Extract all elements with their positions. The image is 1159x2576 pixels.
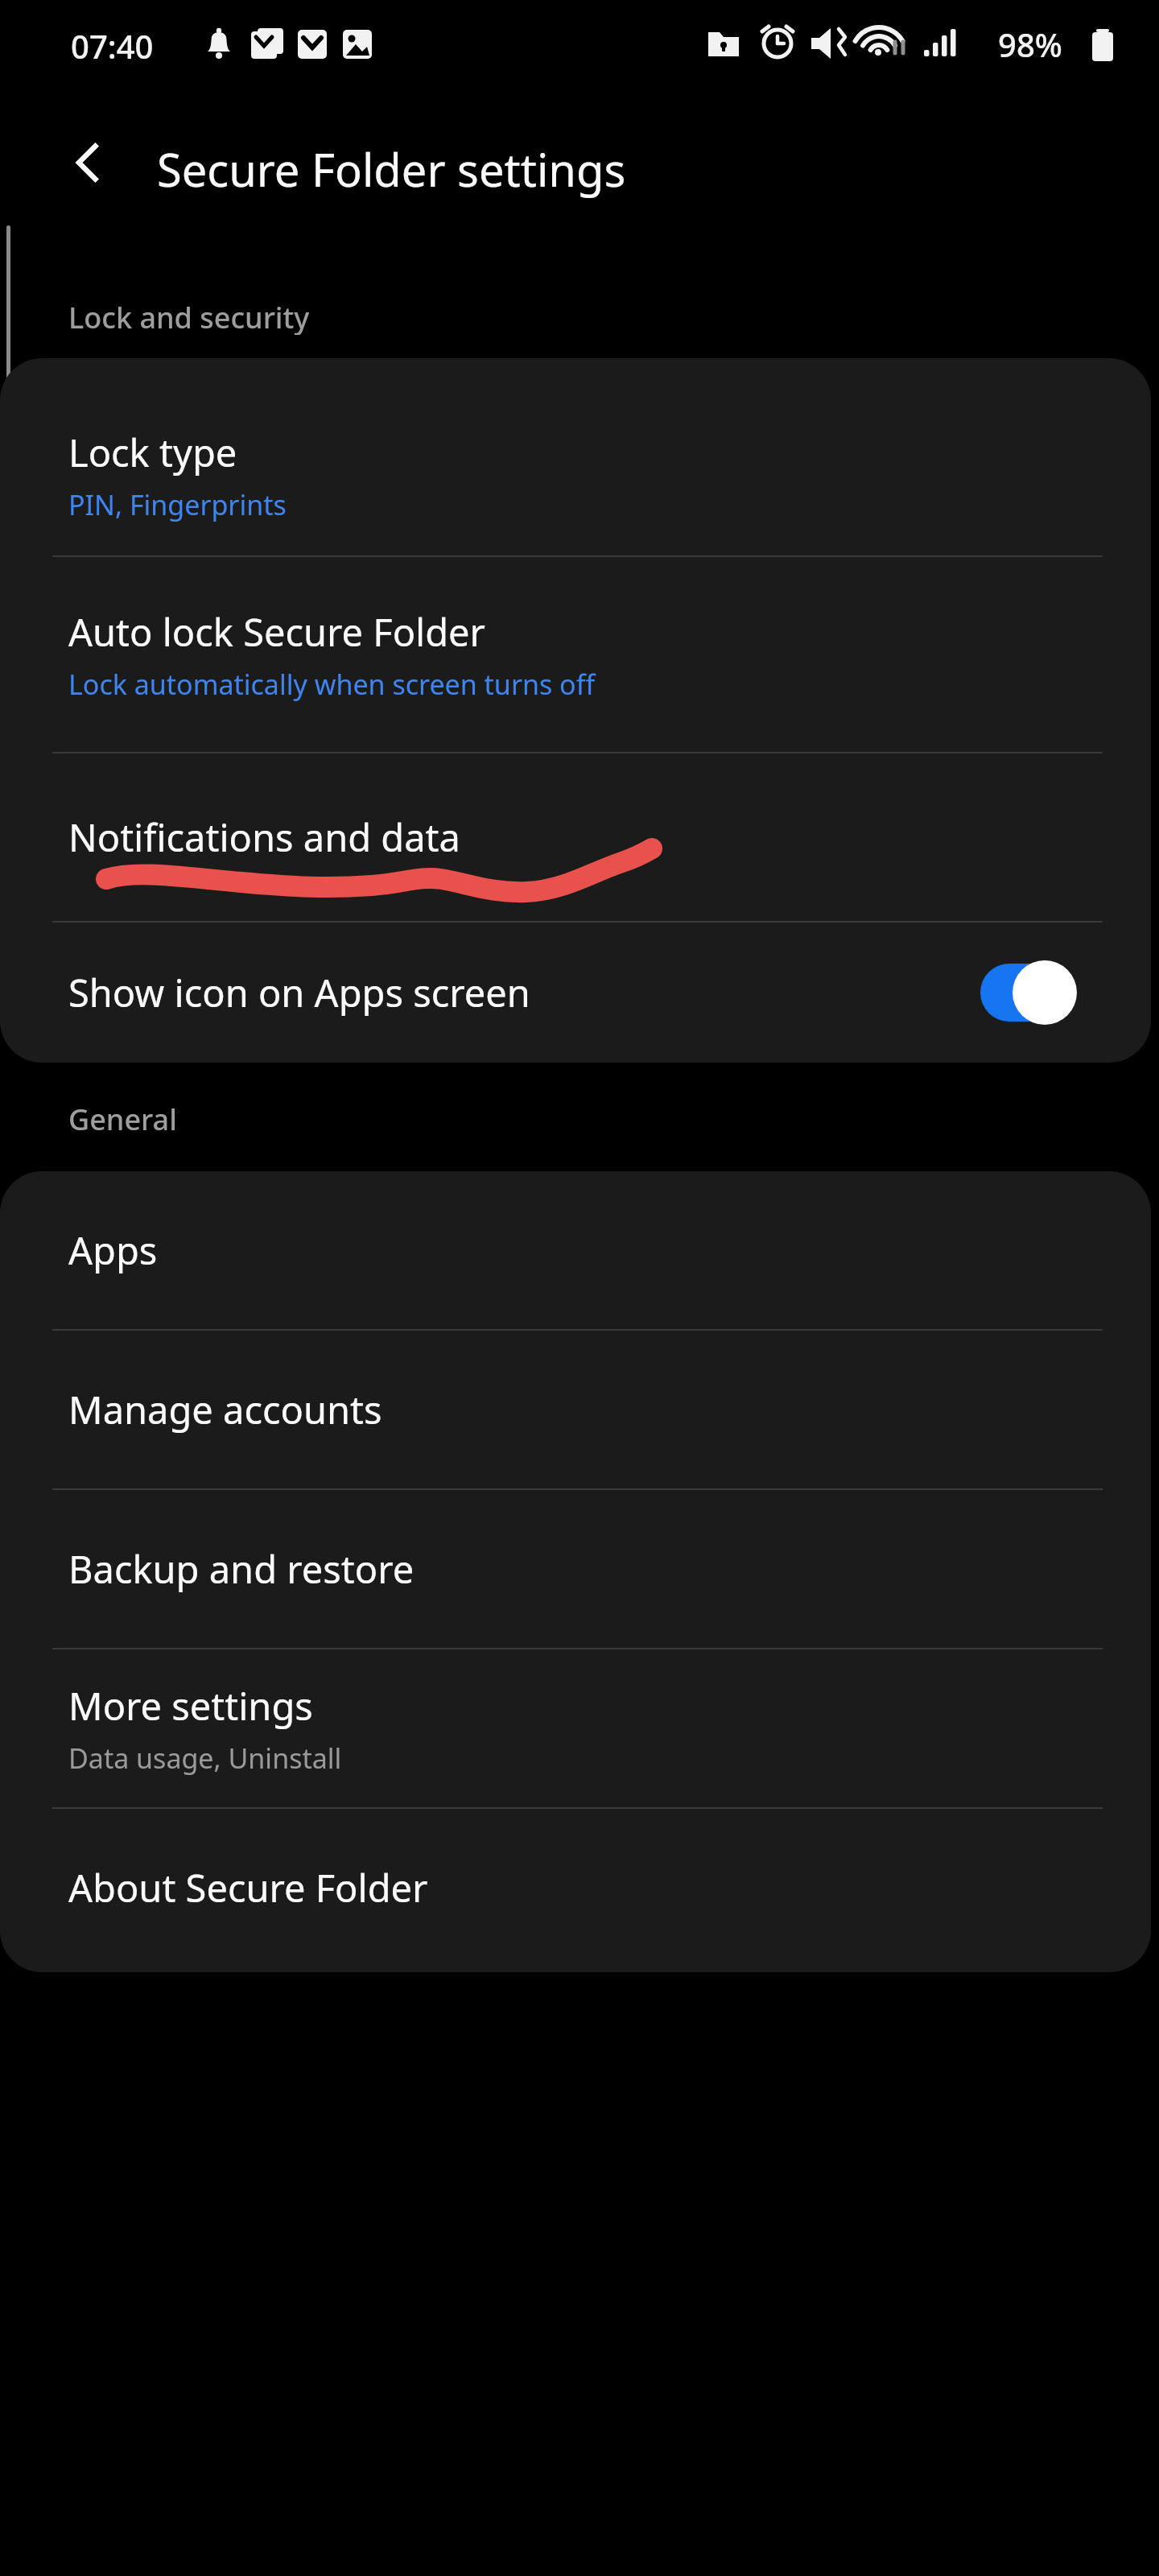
- button[interactable]: Back: [50, 124, 127, 201]
- staticText: About Secure Folder: [68, 1862, 428, 1913]
- staticText: Auto lock Secure Folder: [68, 606, 486, 658]
- button[interactable]: Backup and restore: [0, 1490, 1151, 1648]
- button[interactable]: Manage accounts: [0, 1331, 1151, 1488]
- staticText: Notifications and data: [68, 811, 460, 863]
- button[interactable]: Show icon on Apps screen: [0, 923, 1151, 1063]
- staticText: Lock and security: [68, 298, 310, 335]
- staticText: Data usage, Uninstall: [68, 1740, 342, 1777]
- staticText: General: [68, 1100, 177, 1137]
- staticText: Apps: [68, 1224, 158, 1276]
- staticText: Lock automatically when screen turns off: [68, 666, 596, 703]
- button[interactable]: About Secure Folder: [0, 1809, 1151, 1967]
- staticText: Manage accounts: [68, 1384, 382, 1435]
- staticText: More settings: [68, 1680, 313, 1732]
- staticText: PIN, Fingerprints: [68, 486, 287, 523]
- button[interactable]: More settings: [0, 1649, 1151, 1807]
- staticText: 98%: [998, 23, 1062, 66]
- staticText: Show icon on Apps screen: [68, 967, 530, 1018]
- button[interactable]: Show icon on Apps screen toggle, on: [980, 960, 1079, 1025]
- button[interactable]: Notifications and data: [0, 753, 1151, 921]
- staticText: 07:40: [71, 24, 154, 68]
- button[interactable]: Auto lock Secure Folder: [0, 557, 1151, 752]
- button[interactable]: Apps: [0, 1171, 1151, 1329]
- staticText: Lock type: [68, 427, 237, 478]
- staticText: Secure Folder settings: [157, 138, 626, 200]
- staticText: Backup and restore: [68, 1543, 415, 1595]
- button[interactable]: Lock type: [0, 394, 1151, 555]
